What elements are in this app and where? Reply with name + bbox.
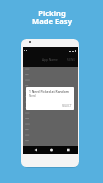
button[interactable]: SELECT [62,104,72,108]
staticText: SELECT [62,104,72,108]
staticText: App Name [42,58,58,62]
staticText: Nerd [29,94,36,98]
staticText: 1 Nerd Picked at Random [29,89,69,93]
staticText: MENU [67,58,76,62]
staticText: Picking Made Easy [32,8,72,26]
